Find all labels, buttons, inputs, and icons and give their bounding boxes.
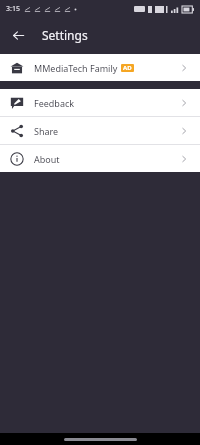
button[interactable]: Back [8, 25, 28, 45]
staticText: About [34, 153, 60, 165]
button[interactable]: Share [0, 117, 200, 144]
staticText: AD [123, 64, 132, 72]
button[interactable]: MMediaTech Family [0, 54, 200, 81]
button[interactable]: Feedback [0, 89, 200, 116]
staticText: 3:15 [6, 4, 20, 14]
staticText: MMediaTech Family [34, 62, 118, 74]
button[interactable]: About [0, 145, 200, 172]
staticText: Share [34, 125, 59, 137]
staticText: Feedback [34, 97, 75, 109]
staticText: Settings [42, 27, 88, 43]
